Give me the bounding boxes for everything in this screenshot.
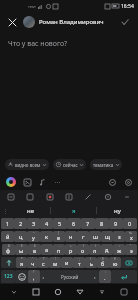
- button[interactable]: :: [99, 270, 111, 283]
- button[interactable]: Hide keyboard: [6, 284, 22, 300]
- button[interactable]: 1: [1, 218, 14, 229]
- staticText: е: [57, 234, 61, 241]
- staticText: щ: [105, 233, 110, 240]
- button[interactable]: 5: [53, 218, 67, 229]
- button[interactable]: Avatar: [23, 16, 35, 28]
- button[interactable]: Sticker: [4, 175, 18, 189]
- button[interactable]: 0: [123, 218, 137, 229]
- button[interactable]: /: [85, 257, 97, 268]
- button[interactable]: тематика: [90, 159, 122, 170]
- button[interactable]: Note: [22, 191, 38, 203]
- button[interactable]: сейчас: [53, 159, 86, 170]
- button[interactable]: ну: [97, 204, 138, 217]
- button[interactable]: Shift: [1, 257, 16, 268]
- button[interactable]: ~: [27, 231, 40, 242]
- button[interactable]: з: [113, 231, 125, 242]
- button[interactable]: Expand: [119, 191, 135, 203]
- button[interactable]: Switch keyboard: [94, 284, 110, 300]
- button[interactable]: Clipboard: [42, 191, 58, 203]
- staticText: *: [21, 257, 23, 261]
- button[interactable]: +: [65, 244, 77, 255]
- button[interactable]: Translate: [61, 191, 77, 203]
- button[interactable]: Text: [3, 191, 19, 203]
- button[interactable]: 7: [81, 218, 95, 229]
- staticText: п: [57, 247, 61, 254]
- button[interactable]: (: [77, 244, 89, 255]
- staticText: л: [93, 247, 97, 254]
- button[interactable]: Emoji: [15, 270, 28, 283]
- staticText: ?: [33, 270, 35, 274]
- button[interactable]: Settings: [106, 176, 118, 188]
- button[interactable]: Voice: [0, 204, 10, 217]
- button[interactable]: Options: [122, 176, 134, 188]
- button[interactable]: ◂: [40, 270, 99, 283]
- button[interactable]: Back: [72, 284, 88, 300]
- button[interactable]: Home: [50, 284, 66, 300]
- button[interactable]: видно всем: [5, 159, 49, 170]
- button[interactable]: Recents: [28, 284, 44, 300]
- staticText: ~: [33, 231, 35, 235]
- button[interactable]: -: [53, 244, 65, 255]
- button[interactable]: Theme: [80, 191, 96, 203]
- button[interactable]: :: [113, 244, 125, 255]
- button[interactable]: $: [15, 244, 28, 255]
- button[interactable]: №: [125, 231, 137, 242]
- button[interactable]: €: [109, 257, 121, 268]
- staticText: £: [34, 244, 36, 248]
- button[interactable]: *: [16, 257, 27, 268]
- staticText: ч: [31, 260, 35, 267]
- button[interactable]: 3: [27, 218, 40, 229]
- button[interactable]: ): [89, 244, 101, 255]
- button[interactable]: Clipboard: [116, 284, 132, 300]
- button[interactable]: Photo: [21, 176, 33, 188]
- button[interactable]: $: [97, 257, 109, 268]
- button[interactable]: ?: [38, 257, 49, 268]
- button[interactable]: ц: [14, 231, 27, 242]
- staticText: а: [45, 246, 49, 253]
- button[interactable]: ш: [89, 231, 101, 242]
- button[interactable]: н: [65, 231, 77, 242]
- button[interactable]: £: [28, 244, 41, 255]
- button[interactable]: 8: [95, 218, 109, 229]
- button[interactable]: 4: [40, 218, 53, 229]
- button[interactable]: Enter: [111, 270, 137, 283]
- staticText: 16:54: [121, 3, 134, 10]
- button[interactable]: Music: [36, 176, 48, 188]
- button[interactable]: |: [53, 231, 65, 242]
- button[interactable]: д: [101, 244, 113, 255]
- staticText: €: [114, 257, 116, 261]
- button[interactable]: More: [51, 176, 63, 188]
- button[interactable]: к: [40, 231, 53, 242]
- button[interactable]: !: [49, 257, 61, 268]
- staticText: !: [55, 257, 56, 261]
- button[interactable]: Close: [5, 15, 19, 29]
- staticText: ◂: [42, 275, 45, 280]
- staticText: 9: [114, 220, 118, 227]
- button[interactable]: ;: [73, 257, 85, 268]
- button[interactable]: и: [61, 257, 73, 268]
- button[interactable]: не: [10, 204, 50, 217]
- button[interactable]: Backspace: [121, 257, 137, 268]
- button[interactable]: 6: [67, 218, 81, 229]
- staticText: ну: [114, 207, 121, 215]
- button[interactable]: щ: [101, 231, 113, 242]
- button[interactable]: г: [77, 231, 89, 242]
- staticText: ю: [113, 260, 118, 267]
- staticText: +: [70, 244, 72, 248]
- button[interactable]: 2: [14, 218, 27, 229]
- button[interactable]: я: [51, 204, 96, 217]
- button[interactable]: ?: [28, 270, 40, 283]
- button[interactable]: #: [2, 244, 15, 255]
- staticText: не: [27, 207, 34, 215]
- button[interactable]: 9: [109, 218, 123, 229]
- staticText: сейчас: [63, 162, 78, 168]
- staticText: 3: [32, 220, 36, 227]
- button[interactable]: Publish: [117, 14, 133, 30]
- button[interactable]: ": [125, 244, 137, 255]
- button[interactable]: Info: [100, 191, 116, 203]
- button[interactable]: 123: [1, 270, 15, 283]
- button[interactable]: а: [41, 244, 53, 255]
- staticText: ,: [33, 274, 35, 281]
- button[interactable]: ': [27, 257, 38, 268]
- button[interactable]: й: [1, 231, 14, 242]
